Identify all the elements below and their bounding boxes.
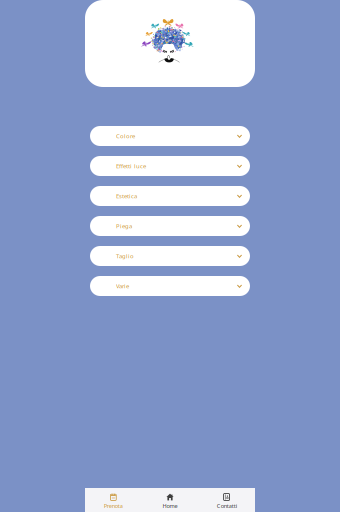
staticText: Estetica (116, 192, 137, 200)
button[interactable]: Estetica (90, 186, 250, 206)
staticText: Taglio (116, 252, 134, 260)
button[interactable]: Home (142, 488, 198, 512)
staticText: Contatti (217, 502, 237, 510)
button[interactable]: Varie (90, 276, 250, 296)
staticText: Piega (116, 222, 132, 230)
staticText: Home (162, 502, 177, 510)
staticText: Effetti luce (116, 162, 146, 170)
button[interactable]: Taglio (90, 246, 250, 266)
staticText: Varie (116, 282, 129, 290)
button[interactable]: Piega (90, 216, 250, 236)
button[interactable]: Contatti (198, 488, 255, 512)
staticText: Prenota (104, 502, 123, 510)
button[interactable]: Prenota (85, 488, 142, 512)
button[interactable]: Effetti luce (90, 156, 250, 176)
staticText: Colore (116, 132, 135, 140)
button[interactable]: Colore (90, 126, 250, 146)
